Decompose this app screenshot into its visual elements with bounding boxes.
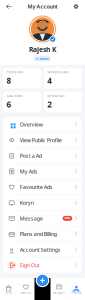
staticText: POSTED ADS [6,70,22,74]
staticText: 4 [47,75,52,86]
staticText: 8 [6,75,11,86]
staticText: MEMBER [39,57,49,60]
button[interactable]: Post a Ad [3,148,82,163]
staticText: My Account [27,3,57,10]
staticText: Overview [20,121,43,128]
button[interactable]: Plans and Billing [3,226,82,242]
button[interactable]: Account Settings [3,242,82,257]
button[interactable]: Overview [3,117,82,132]
staticText: Account Settings [20,246,61,253]
button[interactable]: Settings [70,0,82,12]
staticText: 6 [6,99,11,110]
staticText: Post a Ad [20,152,42,159]
button[interactable]: My Ads [3,164,82,179]
staticText: Sign Out [20,262,40,269]
button[interactable]: Koryn [3,195,82,210]
staticText: View Public Profile [20,136,62,144]
button[interactable]: View Public Profile [3,132,82,148]
button[interactable]: Message [3,211,82,226]
staticText: Rajesh K [29,45,56,54]
button[interactable]: Profile [68,280,85,297]
staticText: Favourite Ads [20,183,53,191]
staticText: EXPIRED ADS [47,94,64,98]
staticText: TOTAL VIEWS [6,94,22,98]
staticText: Message [20,215,43,222]
button[interactable]: Home [0,280,17,297]
staticText: Home [5,291,13,294]
staticText: NEW [64,217,70,220]
staticText: 2 [47,99,52,110]
button[interactable]: Sign Out [3,258,82,273]
button[interactable]: Favourite Ads [3,179,82,195]
staticText: Messages [53,291,65,294]
staticText: My Ads [20,168,38,175]
button[interactable]: Post an ad [36,274,49,287]
staticText: Koryn [20,199,34,206]
button[interactable]: Messages [50,280,68,297]
staticText: FAVOURITE ADS [47,70,68,74]
button[interactable]: Favorites [17,280,34,297]
staticText: Profile [71,291,81,294]
staticText: Plans and Billing [20,230,57,237]
button[interactable]: Back [3,0,15,12]
staticText: Favorites [20,291,31,294]
